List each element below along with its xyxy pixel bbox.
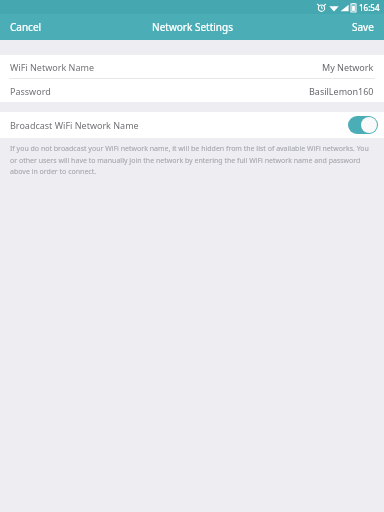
staticText: Password <box>10 85 51 97</box>
button[interactable]: Save <box>342 14 384 40</box>
button[interactable]: Cancel <box>0 14 52 40</box>
staticText: BasilLemon160 <box>309 85 374 97</box>
staticText: If you do not broadcast your WiFi networ… <box>10 144 375 176</box>
staticText: Broadcast WiFi Network Name <box>10 119 139 131</box>
button[interactable]: Password <box>0 79 384 102</box>
staticText: 16:54 <box>359 2 380 13</box>
staticText: Cancel <box>10 20 42 34</box>
staticText: My Network <box>322 61 374 73</box>
staticText: Network Settings <box>152 20 233 34</box>
button[interactable]: Toggle broadcast WiFi network name <box>348 116 378 134</box>
button[interactable]: Broadcast WiFi Network Name <box>0 112 384 138</box>
button[interactable]: WiFi Network Name <box>0 55 384 78</box>
staticText: Save <box>352 20 374 34</box>
staticText: WiFi Network Name <box>10 61 94 73</box>
